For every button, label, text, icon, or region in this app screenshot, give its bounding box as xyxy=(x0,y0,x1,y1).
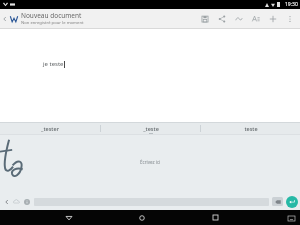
staticText: Nouveau document xyxy=(21,11,82,20)
staticText: _tester xyxy=(41,125,59,132)
staticText: je teste xyxy=(43,60,64,68)
button[interactable]: _tester xyxy=(0,123,100,134)
button[interactable]: _teste xyxy=(101,123,200,134)
button[interactable]: Handwriting input area xyxy=(0,135,300,193)
button[interactable]: Back xyxy=(60,210,78,225)
staticText: 19:30 xyxy=(285,1,298,8)
button[interactable]: More options xyxy=(281,9,298,28)
staticText: Non enregistré pour le moment xyxy=(21,20,84,26)
button[interactable]: Home xyxy=(133,210,151,225)
button[interactable]: Keyboard xyxy=(284,211,298,225)
button[interactable]: teste xyxy=(201,123,300,134)
staticText: _teste xyxy=(143,125,159,132)
staticText: Écrivez ici xyxy=(140,159,161,165)
staticText: teste xyxy=(244,125,258,132)
button[interactable]: Enter xyxy=(286,196,298,208)
button[interactable]: Info xyxy=(22,197,32,207)
button[interactable]: Back xyxy=(2,197,11,206)
button[interactable]: Back xyxy=(1,15,8,22)
button[interactable]: Save xyxy=(196,9,213,28)
button[interactable]: Text formatting xyxy=(247,9,264,28)
button[interactable]: Share xyxy=(213,9,230,28)
button[interactable]: Insert xyxy=(264,9,281,28)
button[interactable]: Recent apps xyxy=(206,210,224,225)
button[interactable]: Cloud sync xyxy=(11,196,22,207)
button[interactable]: Backspace xyxy=(272,197,283,206)
button[interactable]: Undo xyxy=(230,9,247,28)
